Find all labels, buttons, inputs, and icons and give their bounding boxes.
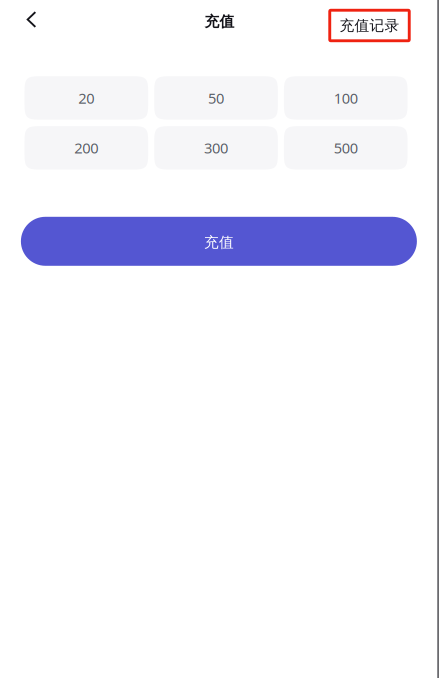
staticText: 100 [334,88,358,108]
staticText: 50 [208,88,224,108]
button[interactable]: 20 [24,76,148,120]
staticText: 充值记录 [339,16,399,34]
staticText: 200 [74,138,98,158]
staticText: 300 [204,138,228,158]
staticText: 500 [334,138,358,158]
staticText: 充值 [204,12,234,30]
staticText: 充值 [204,233,234,251]
button[interactable]: 充值 [21,217,417,266]
button[interactable]: Back [0,0,47,41]
button[interactable]: 200 [24,126,148,170]
button[interactable]: 充值记录 [330,11,408,40]
button[interactable]: 300 [154,126,278,170]
button[interactable]: 500 [284,126,408,170]
button[interactable]: 100 [284,76,408,120]
staticText: 20 [78,88,94,108]
button[interactable]: 50 [154,76,278,120]
